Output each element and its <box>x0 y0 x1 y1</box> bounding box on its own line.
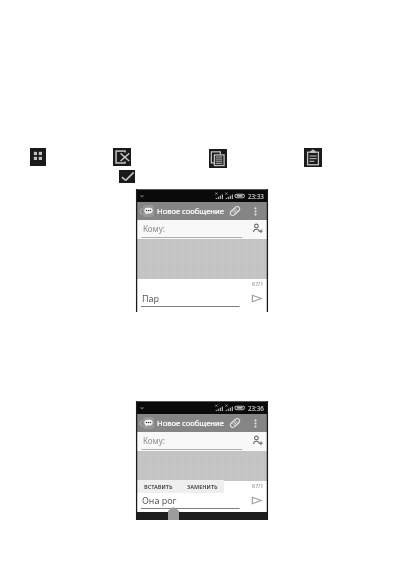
staticText: Кому: <box>143 435 165 446</box>
button[interactable]: Back <box>136 414 268 432</box>
button[interactable]: Copy <box>209 149 227 168</box>
button[interactable]: Cut <box>113 148 131 166</box>
button[interactable]: Кому: <box>136 220 268 239</box>
button[interactable]: ЗАМЕНИТЬ <box>180 480 224 493</box>
button[interactable]: Она рог <box>136 492 268 508</box>
staticText: Пар <box>142 292 160 304</box>
staticText: 67/1 <box>252 280 264 287</box>
staticText: ВСТАВИТЬ <box>144 483 173 490</box>
button[interactable]: Пар <box>136 290 268 306</box>
button[interactable]: Back <box>136 202 268 220</box>
other: Back <box>138 419 143 428</box>
staticText: Она рог <box>142 494 177 506</box>
other: Attach <box>228 204 242 218</box>
staticText: Кому: <box>143 223 165 234</box>
other: Back <box>138 207 143 216</box>
staticText: 67/1 <box>252 482 264 489</box>
other: Send <box>250 292 263 305</box>
other: More options <box>254 418 257 429</box>
button[interactable]: Apps <box>30 148 46 166</box>
staticText: Новое сообщение <box>157 418 224 428</box>
button[interactable]: Select <box>119 170 135 183</box>
other: More options <box>254 206 257 217</box>
button[interactable]: ВСТАВИТЬ <box>137 480 180 493</box>
button[interactable]: Paste <box>304 148 322 167</box>
other: Attach <box>228 416 242 430</box>
staticText: ЗАМЕНИТЬ <box>187 483 218 490</box>
staticText: Новое сообщение <box>157 206 224 216</box>
staticText: 23:36 <box>248 404 264 412</box>
button[interactable]: Кому: <box>136 432 268 451</box>
staticText: 23:33 <box>248 192 264 200</box>
other: Add contact <box>252 223 263 234</box>
other: Add contact <box>252 435 263 446</box>
other: Send <box>250 494 263 507</box>
